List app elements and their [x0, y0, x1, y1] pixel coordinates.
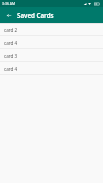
button[interactable]: Back [2, 8, 16, 22]
staticText: card 3 [4, 53, 18, 59]
staticText: Saved Cards [17, 11, 54, 19]
button[interactable]: card 4 [0, 36, 103, 49]
staticText: card 4 [4, 66, 18, 72]
staticText: 3:36 AM [2, 1, 16, 6]
button[interactable]: card 3 [0, 49, 103, 62]
staticText: card 4 [4, 40, 18, 46]
button[interactable]: card 2 [0, 23, 103, 36]
button[interactable]: card 4 [0, 62, 103, 75]
staticText: card 2 [4, 27, 18, 33]
